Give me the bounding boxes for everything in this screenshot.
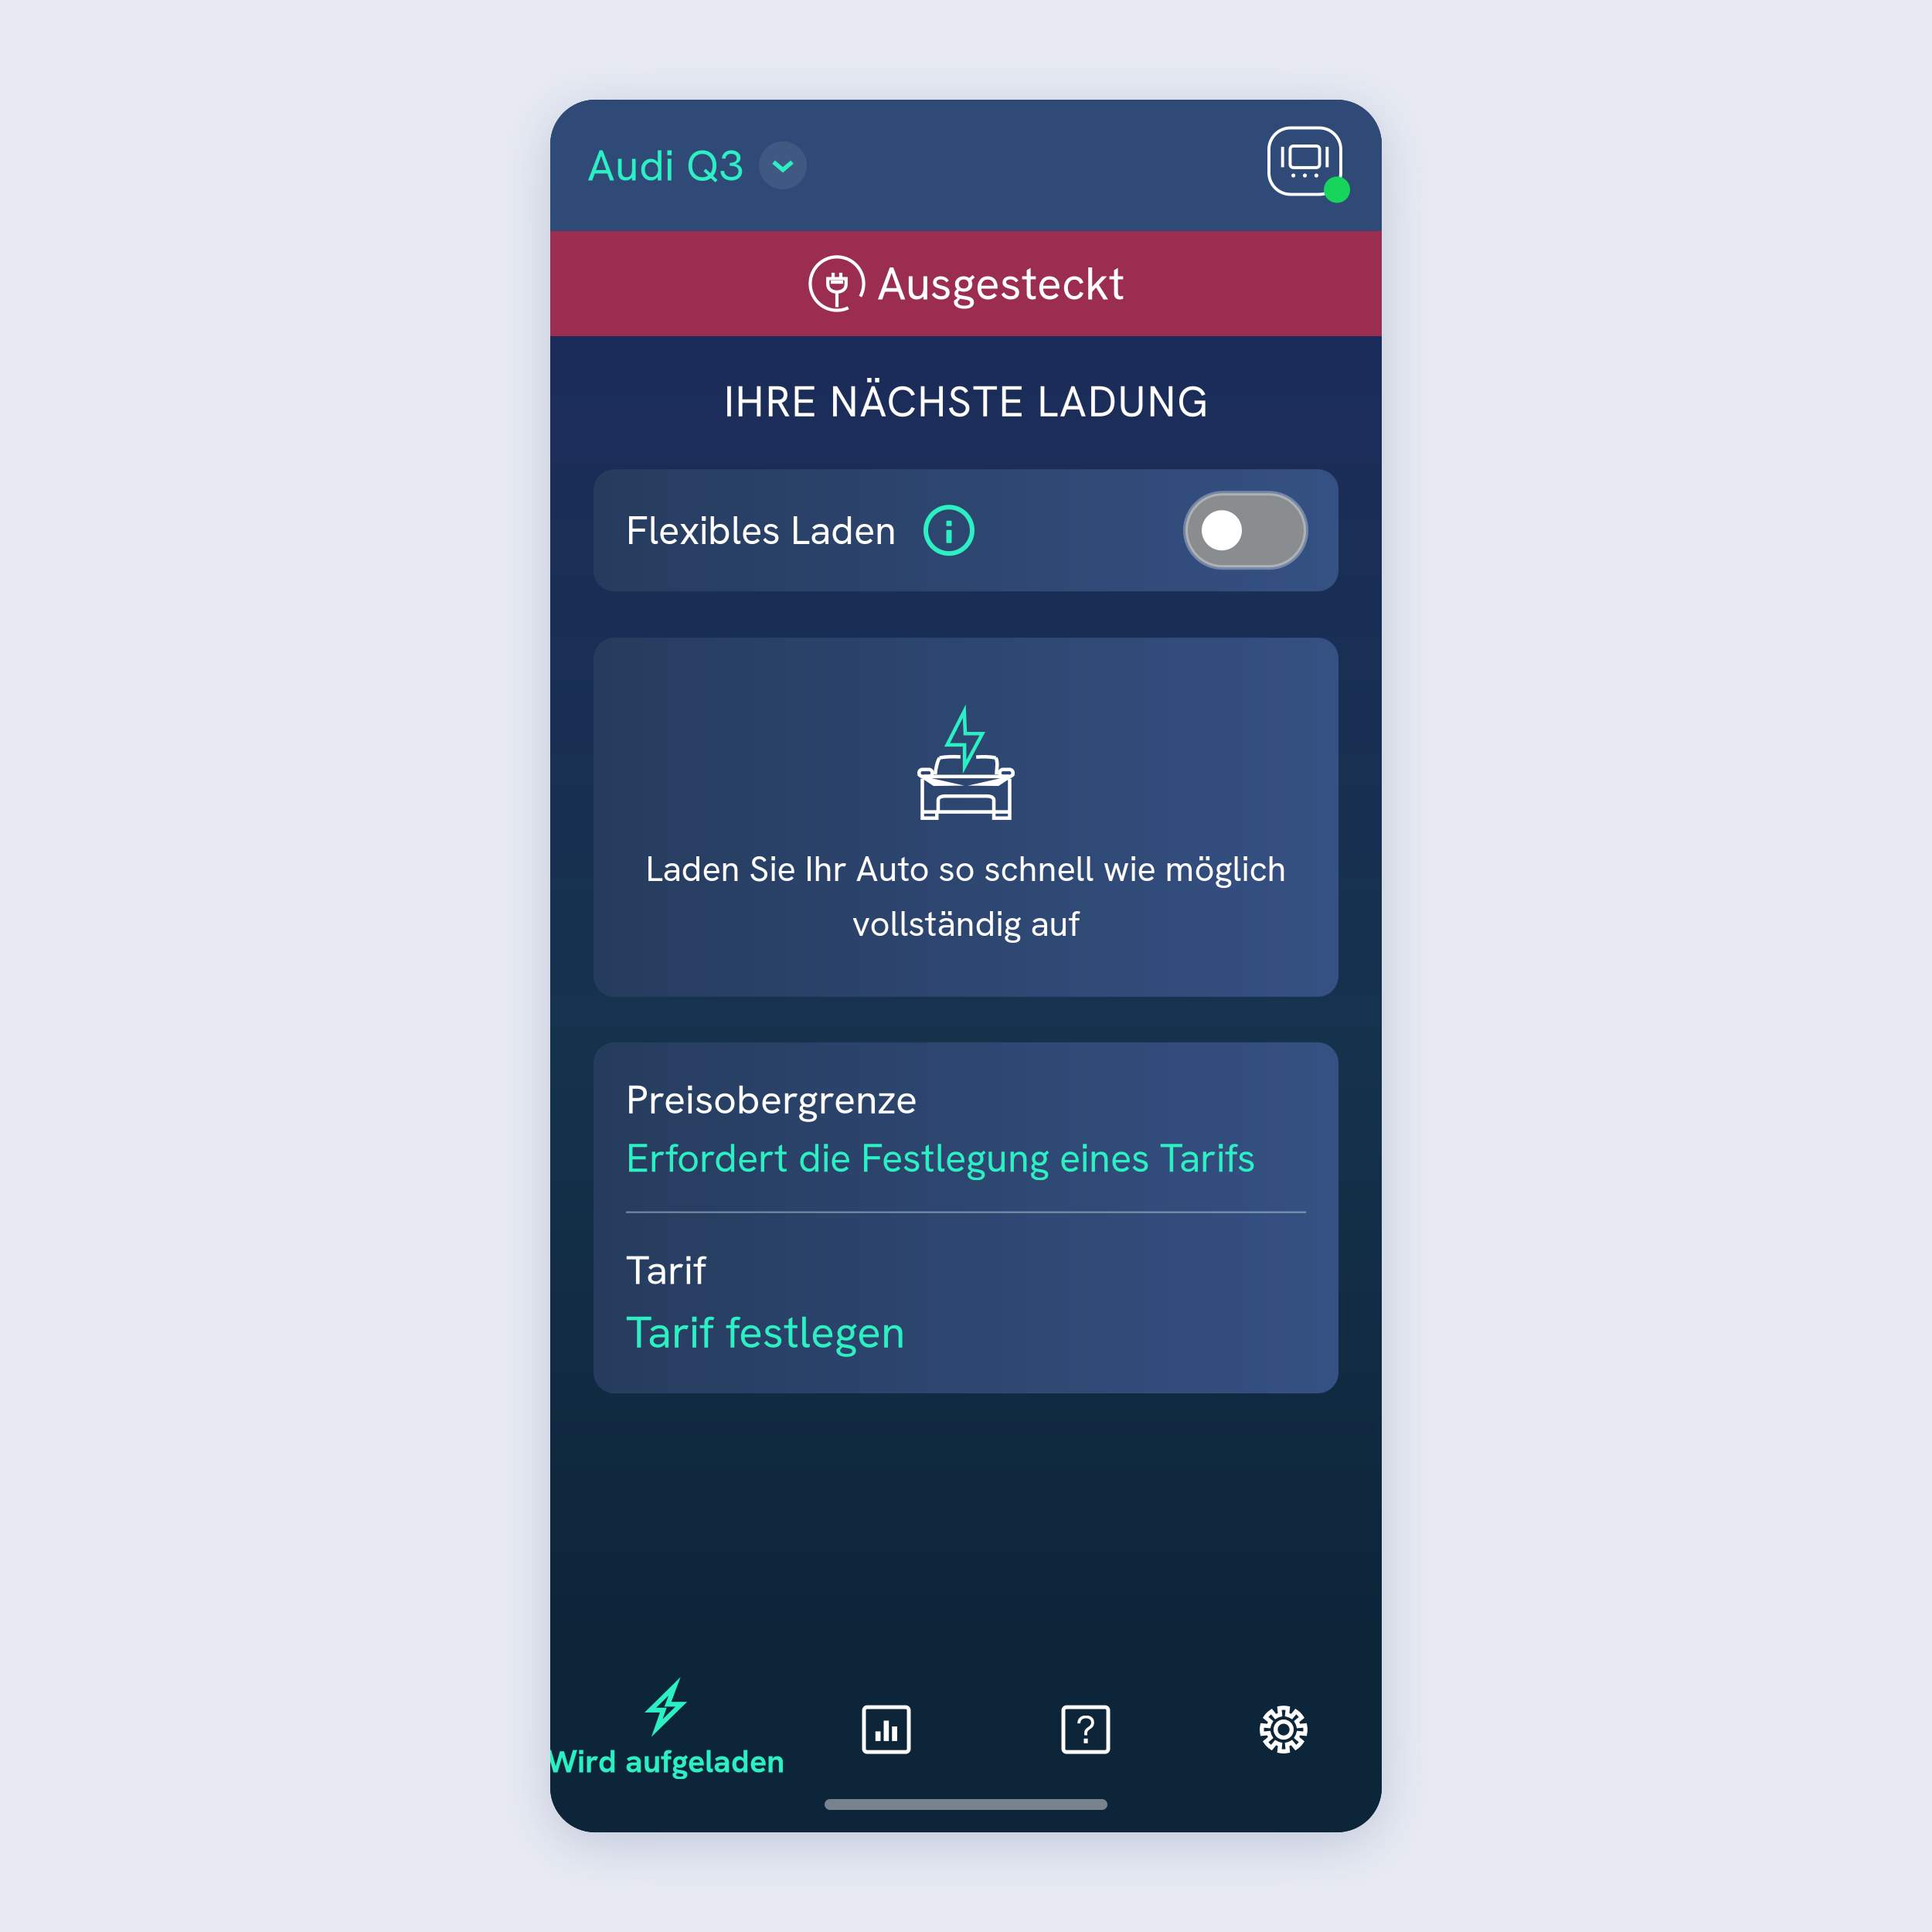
button[interactable]: Tarif bbox=[626, 1213, 1306, 1393]
staticText: Audi Q3 bbox=[587, 137, 743, 194]
button[interactable]: Wird aufgeladen bbox=[546, 1686, 785, 1782]
staticText: Wird aufgeladen bbox=[546, 1740, 784, 1782]
button[interactable]: Wallbox-Status bbox=[1269, 128, 1350, 203]
button[interactable]: Verbrauch bbox=[844, 1707, 929, 1792]
staticText: Laden Sie Ihr Auto so schnell wie möglic… bbox=[646, 846, 1286, 892]
staticText: Tarif festlegen bbox=[626, 1303, 905, 1361]
button[interactable]: Einstellungen bbox=[1241, 1706, 1326, 1791]
staticText: Preisobergrenze bbox=[626, 1073, 917, 1126]
staticText: Ausgesteckt bbox=[877, 254, 1124, 313]
button[interactable]: Audi Q3 bbox=[587, 137, 807, 194]
button[interactable]: Preisobergrenze bbox=[626, 1042, 1306, 1211]
staticText: ? bbox=[1076, 1704, 1096, 1755]
button[interactable]: Hilfe bbox=[1043, 1707, 1128, 1792]
staticText: Tarif bbox=[626, 1244, 706, 1296]
staticText: IHRE NÄCHSTE LADUNG bbox=[724, 374, 1208, 429]
staticText: Erfordert die Festlegung eines Tarifs bbox=[626, 1133, 1256, 1184]
button[interactable]: Flexibles Laden bbox=[594, 469, 1338, 591]
staticText: Flexibles Laden bbox=[626, 505, 896, 556]
staticText: vollständig auf bbox=[852, 901, 1080, 947]
